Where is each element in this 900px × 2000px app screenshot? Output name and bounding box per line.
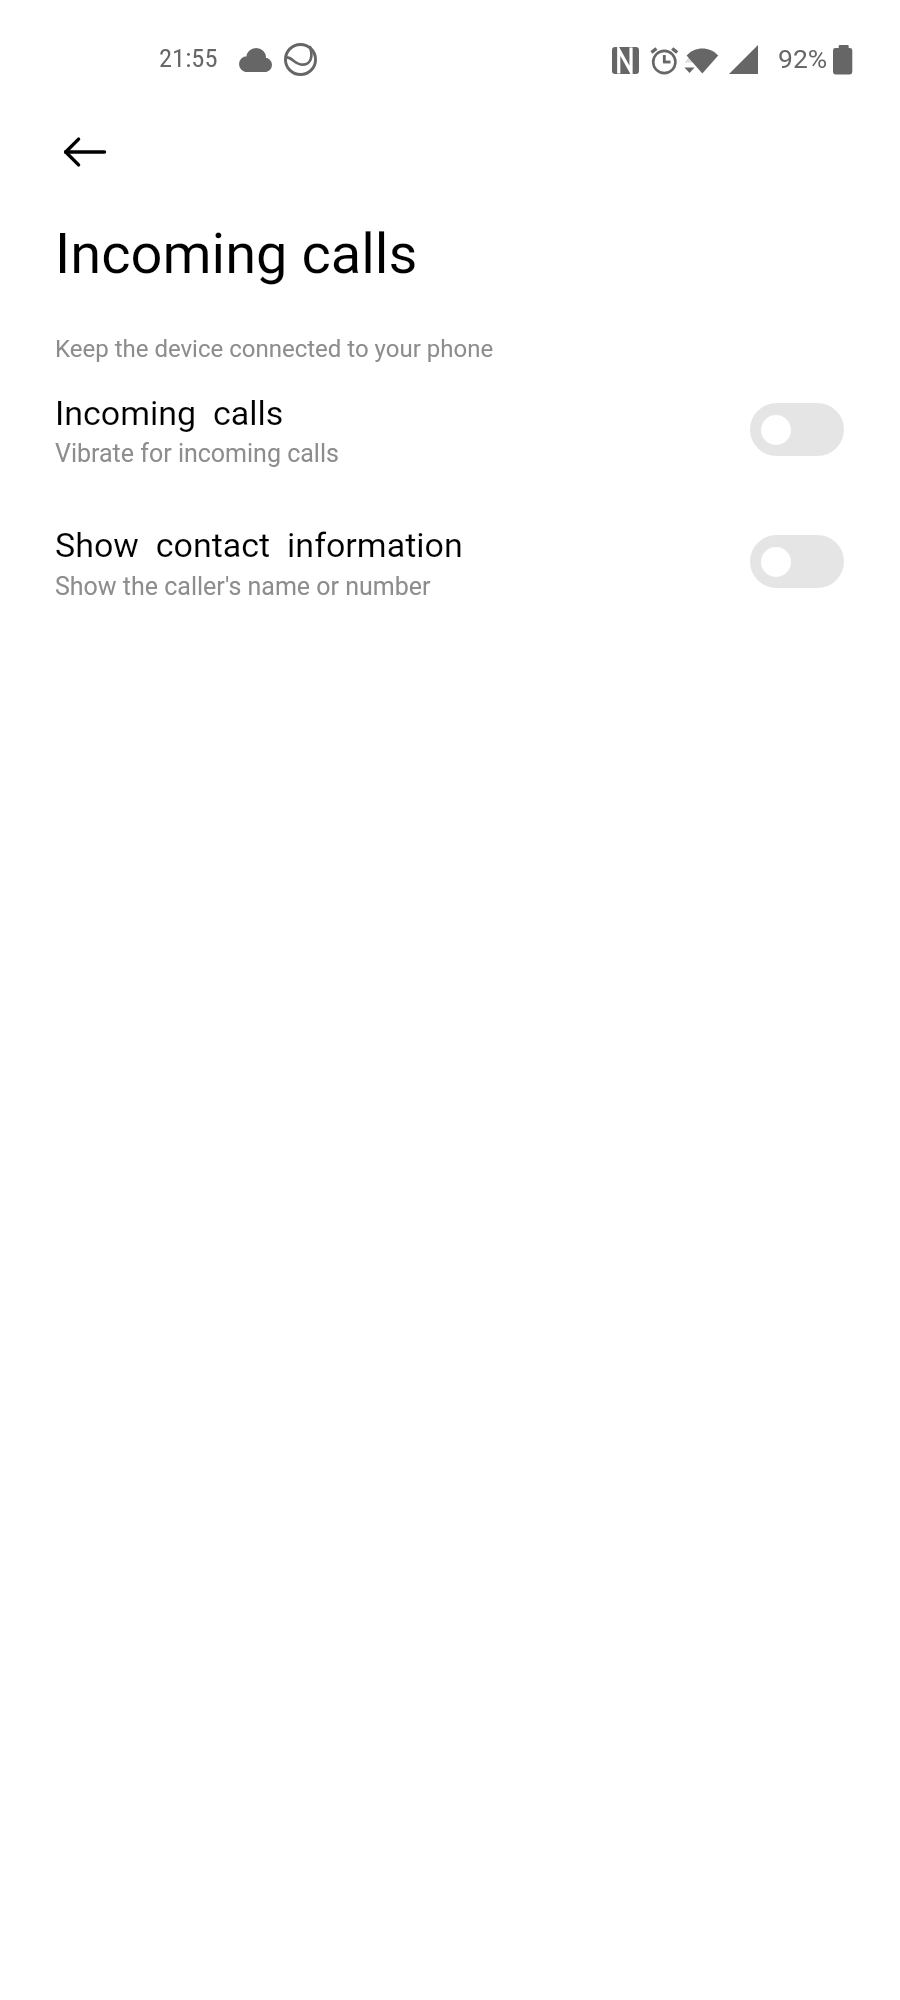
staticText: Show contact information [55, 525, 463, 565]
button[interactable]: Incoming calls [0, 377, 900, 475]
button[interactable]: Toggle Incoming calls [750, 403, 844, 456]
button[interactable]: Show contact information [0, 509, 900, 608]
button[interactable]: Back [57, 123, 113, 179]
staticText: Show the caller's name or number [55, 572, 431, 601]
staticText: Vibrate for incoming calls [55, 439, 339, 468]
staticText: Incoming calls [55, 393, 284, 433]
button[interactable]: Toggle Show contact information [750, 535, 844, 588]
staticText: 92% [778, 43, 828, 74]
staticText: Keep the device connected to your phone [55, 335, 494, 363]
staticText: Incoming calls [55, 221, 418, 287]
staticText: 21:55 [159, 42, 218, 73]
